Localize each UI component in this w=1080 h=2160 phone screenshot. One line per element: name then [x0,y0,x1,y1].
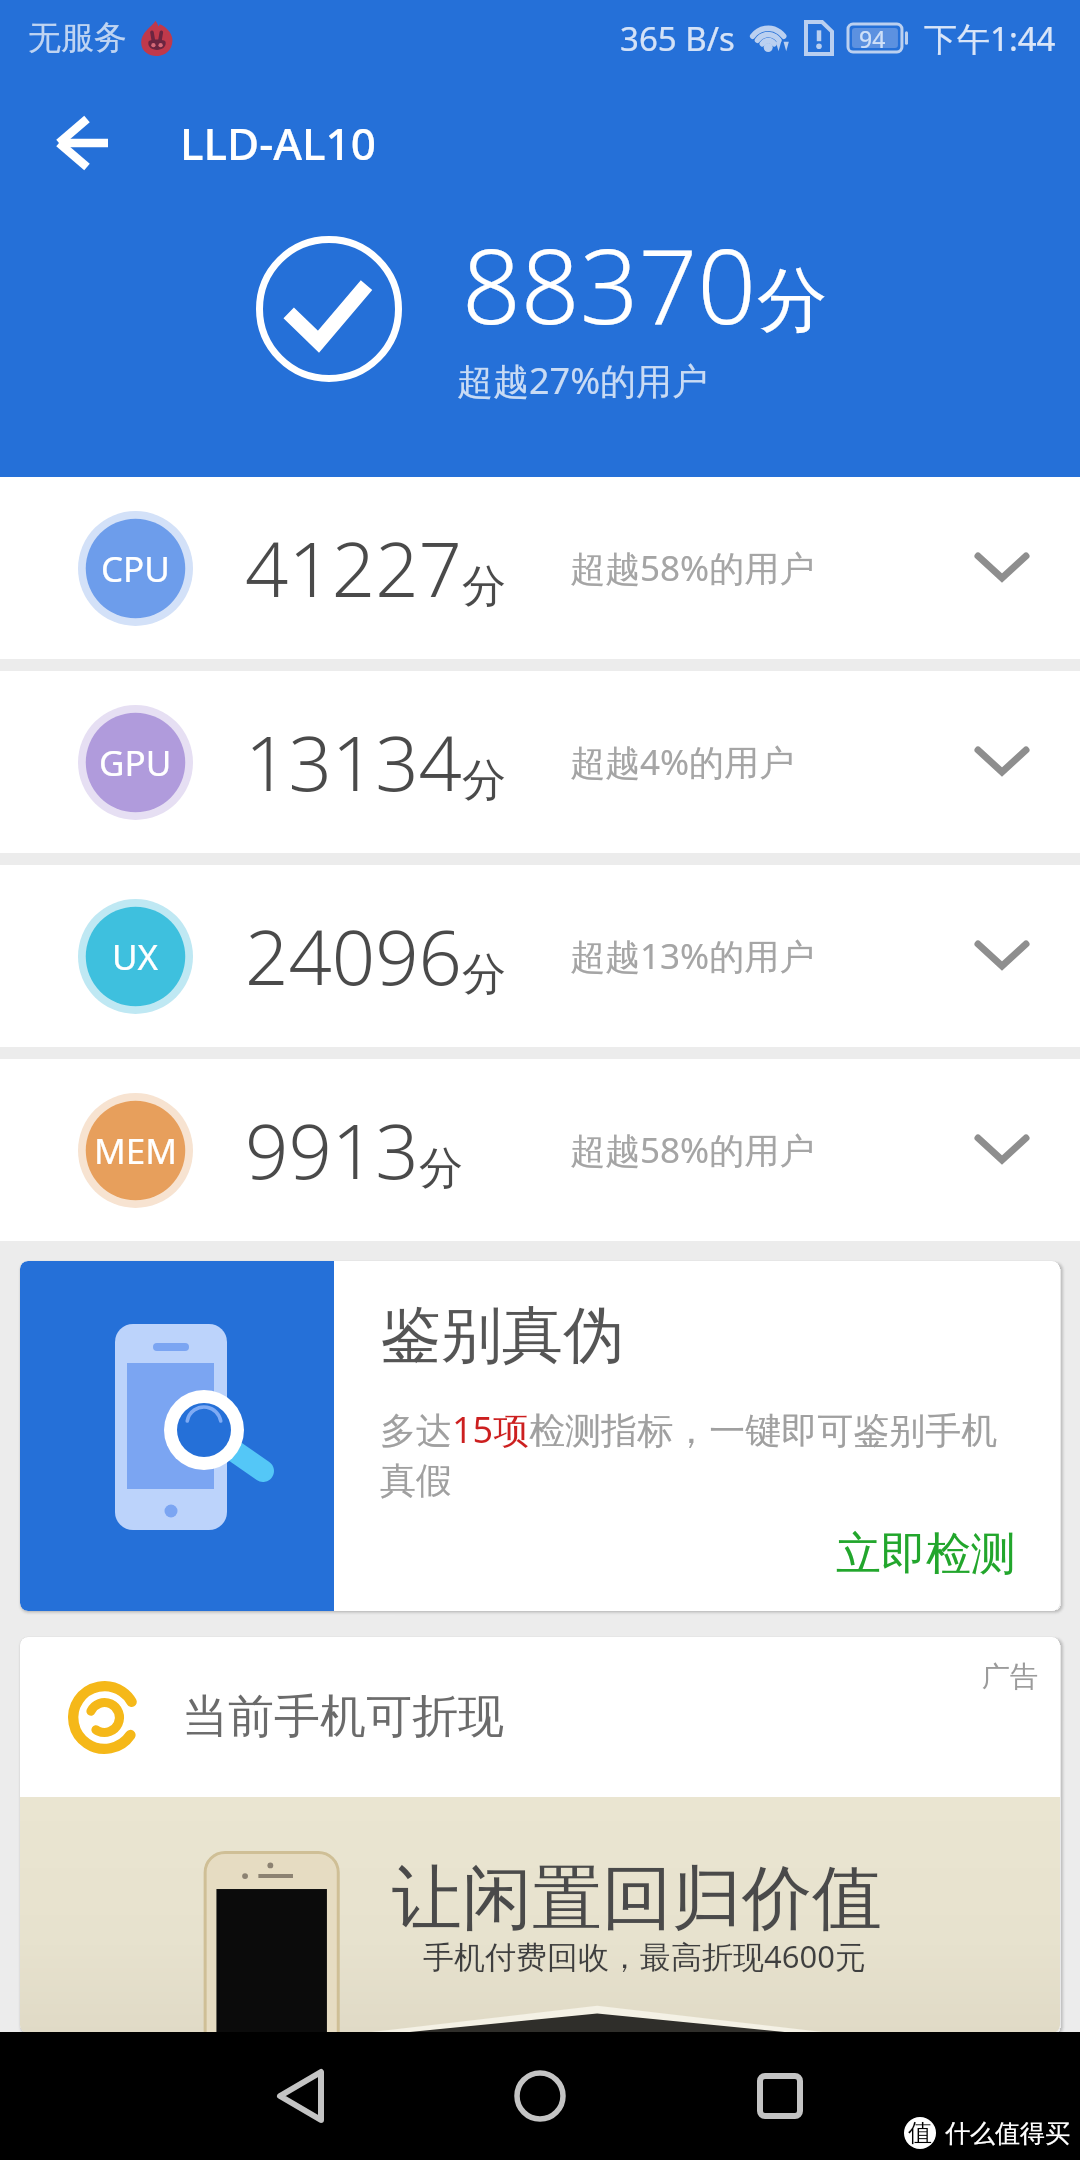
button[interactable]: Back [252,2048,348,2144]
button[interactable]: MEM [0,1059,1080,1241]
button[interactable]: Home [492,2048,588,2144]
staticText: UX [112,933,159,981]
staticText: 让闲置回归价值 [392,1855,882,1943]
staticText: 13134 [245,710,462,814]
staticText: 超越13%的用户 [570,932,815,980]
staticText: 超越58%的用户 [570,1126,815,1174]
staticText: 立即检测 [836,1526,1016,1583]
staticText: 分 [462,947,495,1002]
staticText: 365 B/s [620,16,735,61]
staticText: 鉴别真伪 [380,1297,624,1374]
staticText: 94 [859,23,886,51]
staticText: 广告 [982,1659,1038,1694]
staticText: 分 [757,257,827,345]
staticText: 手机付费回收，最高折现4600元 [423,1935,866,1977]
staticText: MEM [94,1127,177,1175]
staticText: 88370 [462,214,757,354]
staticText: LLD-AL10 [180,113,376,173]
staticText: 下午1:44 [924,16,1056,61]
button[interactable]: UX [0,865,1080,1047]
staticText: 值 [908,2118,932,2148]
staticText: CPU [101,545,170,593]
staticText: 超越27%的用户 [457,356,709,405]
button[interactable]: CPU [0,477,1080,659]
staticText: 分 [462,559,495,614]
button[interactable]: GPU [0,671,1080,853]
staticText: GPU [99,739,172,787]
staticText: 无服务 [28,17,127,59]
staticText: 超越58%的用户 [570,544,815,592]
staticText: 当前手机可折现 [182,1688,504,1746]
staticText: 什么值得买 [945,2118,1070,2149]
staticText: 分 [419,1141,463,1196]
button[interactable]: Back [30,90,135,195]
button[interactable]: 当前手机可折现 [20,1637,1060,2033]
button[interactable]: 鉴别真伪 [20,1261,1060,1611]
button[interactable]: Recents [732,2048,828,2144]
staticText: 41227 [245,516,462,620]
staticText: 9913 [245,1098,419,1202]
staticText: 超越4%的用户 [570,738,795,786]
staticText: 24096 [245,904,462,1008]
staticText: 多达15项检测指标，一键即可鉴别手机真假 [380,1405,1016,1504]
staticText: 分 [462,753,495,808]
